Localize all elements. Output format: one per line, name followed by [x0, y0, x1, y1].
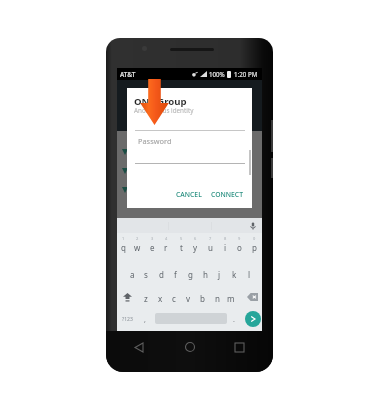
button[interactable]: 9 [232, 236, 246, 258]
button[interactable]: Backspace [246, 291, 259, 303]
button[interactable]: f [168, 268, 182, 280]
button[interactable]: x [153, 292, 167, 304]
staticText: j [218, 269, 221, 280]
button[interactable]: 5 [174, 236, 188, 258]
staticText: CANCEL [176, 190, 202, 199]
staticText: Password [138, 136, 172, 146]
staticText: i [224, 242, 227, 253]
staticText: f [174, 269, 177, 280]
button[interactable]: 4 [159, 236, 173, 258]
button[interactable]: CONNECT [208, 188, 246, 201]
staticText: Anonymous identity [134, 106, 194, 115]
staticText: u [208, 242, 213, 253]
staticText: e [150, 242, 155, 253]
button[interactable]: Recents [229, 337, 249, 357]
button[interactable]: Voice input [247, 220, 258, 231]
button[interactable]: 6 [188, 236, 202, 258]
staticText: 1 [122, 236, 125, 241]
staticText: o [237, 242, 242, 253]
button[interactable]: n [210, 292, 224, 304]
staticText: 9 [238, 236, 241, 241]
staticText: 3 [151, 236, 154, 241]
staticText: r [164, 242, 168, 253]
staticText: l [248, 269, 251, 280]
staticText: AT&T [120, 70, 136, 79]
staticText: p [252, 242, 257, 253]
button[interactable]: m [224, 292, 238, 304]
staticText: 4 [165, 236, 168, 241]
staticText: a [130, 269, 135, 280]
staticText: CONNECT [211, 190, 243, 199]
button[interactable]: s [139, 268, 153, 280]
staticText: t [180, 242, 183, 253]
staticText: v [186, 293, 191, 304]
button[interactable]: . [229, 314, 238, 325]
staticText: . [233, 315, 235, 325]
button[interactable]: Home [180, 337, 200, 357]
button[interactable]: 0 [247, 236, 261, 258]
staticText: 1:20 PM [234, 70, 258, 78]
staticText: g [188, 269, 193, 280]
staticText: s [144, 269, 148, 280]
staticText: 100% [209, 70, 225, 78]
button[interactable]: z [139, 292, 153, 304]
staticText: d [159, 269, 164, 280]
staticText: 5 [180, 236, 183, 241]
button[interactable]: Back [129, 337, 149, 357]
button[interactable]: Enter [245, 311, 261, 327]
staticText: c [172, 293, 176, 304]
button[interactable]: b [195, 292, 209, 304]
button[interactable]: Shift [121, 291, 133, 303]
button[interactable]: c [167, 292, 181, 304]
staticText: b [200, 293, 205, 304]
staticText: m [227, 293, 235, 304]
button[interactable]: j [212, 268, 226, 280]
staticText: y [193, 242, 198, 253]
button[interactable]: ?123 [118, 314, 136, 325]
staticText: w [134, 242, 141, 253]
button[interactable]: 2 [130, 236, 144, 258]
staticText: ?123 [122, 316, 133, 323]
staticText: 6 [194, 236, 197, 241]
button[interactable]: g [183, 268, 197, 280]
staticText: 7 [209, 236, 212, 241]
button[interactable]: 7 [203, 236, 217, 258]
button[interactable]: d [154, 268, 168, 280]
button[interactable]: h [198, 268, 212, 280]
button[interactable]: a [125, 268, 139, 280]
staticText: 8 [224, 236, 227, 241]
staticText: z [144, 293, 148, 304]
staticText: h [203, 269, 208, 280]
staticText: , [144, 315, 146, 325]
button[interactable]: 3 [145, 236, 159, 258]
staticText: n [215, 293, 220, 304]
staticText: x [158, 293, 163, 304]
staticText: 2 [136, 236, 139, 241]
staticText: ONE Group [134, 95, 187, 108]
button[interactable]: l [242, 268, 256, 280]
button[interactable]: v [181, 292, 195, 304]
button[interactable]: , [140, 314, 149, 325]
staticText: q [121, 242, 126, 253]
button[interactable]: CANCEL [173, 188, 205, 201]
staticText: k [232, 269, 237, 280]
button[interactable]: k [227, 268, 241, 280]
staticText: 0 [253, 236, 256, 241]
button[interactable]: 1 [116, 236, 130, 258]
button[interactable]: 8 [218, 236, 232, 258]
